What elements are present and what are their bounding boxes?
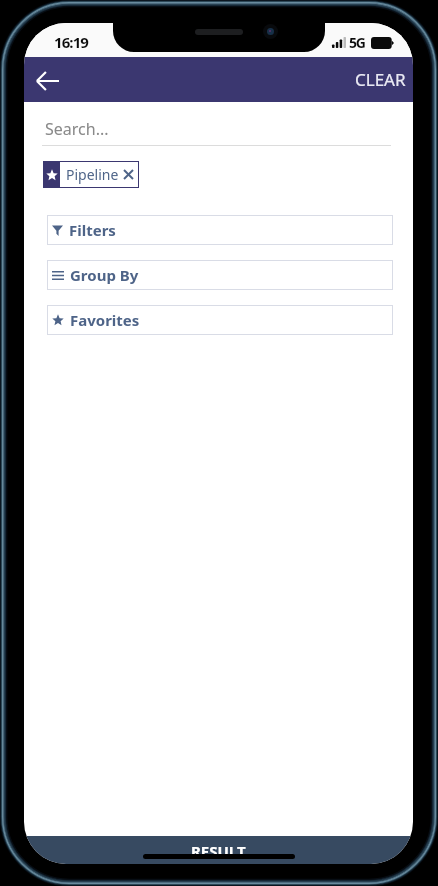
staticText: 16:19 — [54, 32, 89, 52]
button[interactable]: Back — [25, 58, 69, 102]
button[interactable]: Favorites — [47, 305, 393, 335]
staticText: 5G — [349, 33, 365, 52]
button[interactable]: Group By — [47, 260, 393, 290]
staticText: CLEAR — [355, 68, 406, 91]
button[interactable]: CLEAR — [339, 58, 413, 101]
staticText: Group By — [70, 265, 139, 285]
staticText: Search... — [45, 118, 109, 140]
button[interactable]: Pipeline — [43, 161, 139, 188]
staticText: RESULT — [191, 841, 246, 861]
staticText: Favorites — [70, 310, 140, 330]
staticText: Filters — [69, 220, 116, 240]
button[interactable]: Filters — [47, 215, 393, 245]
staticText: Pipeline — [66, 165, 119, 184]
button[interactable]: RESULT — [24, 836, 413, 864]
